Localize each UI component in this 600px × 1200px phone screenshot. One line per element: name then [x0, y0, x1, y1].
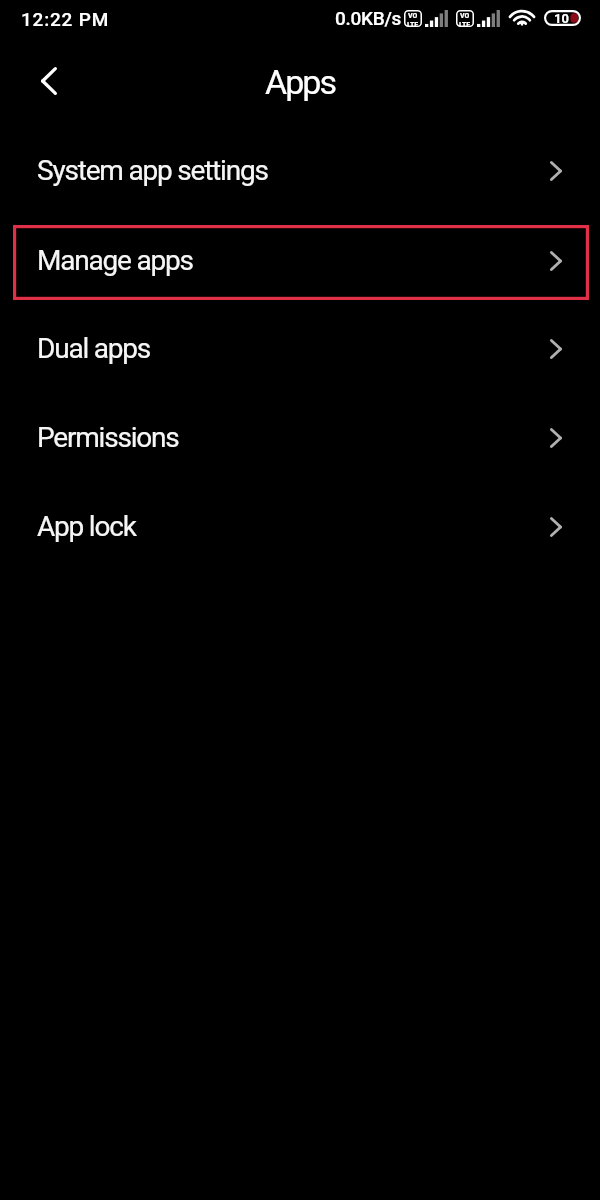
button[interactable]: Permissions [0, 393, 600, 482]
staticText: 0.0KB/s [335, 7, 401, 29]
staticText: Permissions [37, 421, 179, 454]
staticText: 12:22 PM [21, 8, 110, 30]
button[interactable]: Manage apps [0, 216, 600, 305]
staticText: App lock [37, 510, 136, 543]
staticText: LTE [407, 20, 419, 26]
staticText: VO [460, 11, 470, 20]
staticText: Manage apps [37, 244, 193, 277]
staticText: System app settings [37, 154, 268, 187]
button[interactable]: App lock [0, 482, 600, 571]
staticText: VO [408, 11, 418, 20]
staticText: LTE [459, 20, 471, 26]
staticText: Apps [265, 62, 335, 102]
button[interactable]: System app settings [0, 126, 600, 215]
staticText: 10 [554, 11, 569, 26]
button[interactable]: Dual apps [0, 304, 600, 393]
button[interactable]: Back [23, 55, 75, 107]
staticText: Dual apps [37, 332, 151, 365]
